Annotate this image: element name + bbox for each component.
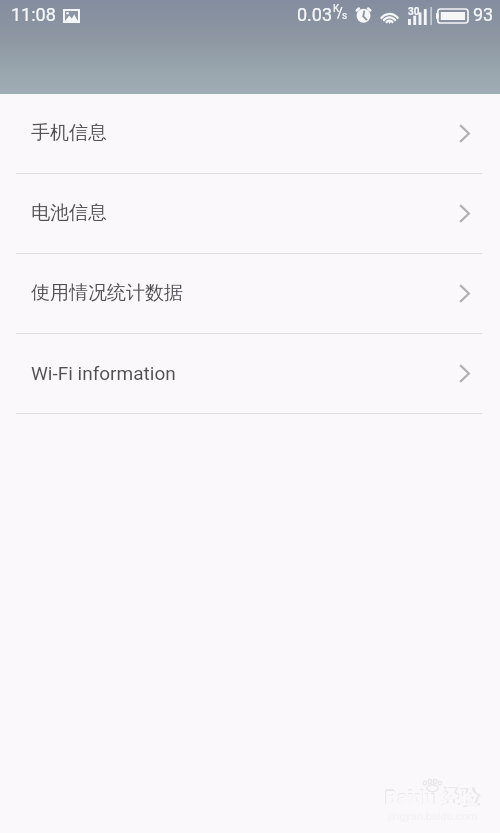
staticText: s (342, 10, 348, 22)
staticText: / (337, 5, 343, 21)
staticText: 0.03 (297, 4, 333, 25)
staticText: 电池信息 (31, 201, 107, 225)
staticText: 11:08 (11, 4, 56, 25)
staticText: 93 (473, 4, 494, 25)
button[interactable]: Wi-Fi information (0, 334, 500, 412)
staticText: Baidu 经验 (385, 786, 478, 810)
staticText: Wi-Fi information (31, 362, 176, 384)
other: Screenshot (63, 9, 80, 23)
staticText: Baidu 经验 (384, 785, 481, 810)
staticText: 30 (408, 6, 420, 18)
button[interactable]: 电池信息 (0, 174, 500, 252)
staticText: K (333, 3, 340, 15)
staticText: 使用情况统计数据 (31, 281, 183, 305)
button[interactable]: 手机信息 (0, 94, 500, 172)
staticText: 手机信息 (31, 121, 107, 145)
button[interactable]: 使用情况统计数据 (0, 254, 500, 332)
